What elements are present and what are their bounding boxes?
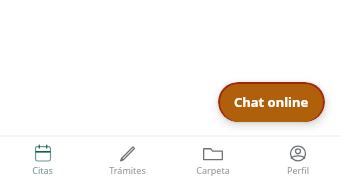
- staticText: Citas: [32, 164, 53, 176]
- staticText: Chat online: [234, 93, 309, 111]
- staticText: Carpeta: [196, 164, 230, 176]
- button[interactable]: Trámites: [85, 137, 170, 176]
- staticText: Trámites: [109, 164, 146, 176]
- button[interactable]: Chat online: [220, 84, 323, 122]
- button[interactable]: Perfil: [255, 137, 340, 176]
- staticText: Perfil: [287, 164, 309, 176]
- button[interactable]: Carpeta: [170, 137, 255, 176]
- button[interactable]: Citas: [0, 137, 85, 176]
